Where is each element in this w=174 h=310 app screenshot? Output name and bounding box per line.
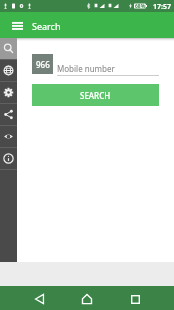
button[interactable]: Info — [0, 148, 17, 169]
staticText: Mobile number — [57, 63, 115, 74]
button[interactable]: Back — [27, 287, 51, 310]
button[interactable]: Open navigation menu — [5, 12, 29, 38]
button[interactable]: 966 — [32, 54, 53, 74]
button[interactable]: Visibility — [0, 126, 17, 147]
button[interactable]: Home — [75, 287, 99, 310]
button[interactable]: Language — [0, 60, 17, 81]
button[interactable]: Settings — [0, 82, 17, 103]
staticText: 68% — [135, 3, 146, 9]
staticText: 17:57 — [153, 2, 171, 12]
button[interactable]: Search — [0, 38, 17, 59]
staticText: SEARCH — [80, 90, 111, 101]
button[interactable]: Share — [0, 104, 17, 125]
button[interactable]: Recent apps — [123, 287, 147, 310]
staticText: 966 — [36, 59, 50, 70]
staticText: Search — [32, 20, 61, 32]
button[interactable]: SEARCH — [32, 84, 159, 106]
